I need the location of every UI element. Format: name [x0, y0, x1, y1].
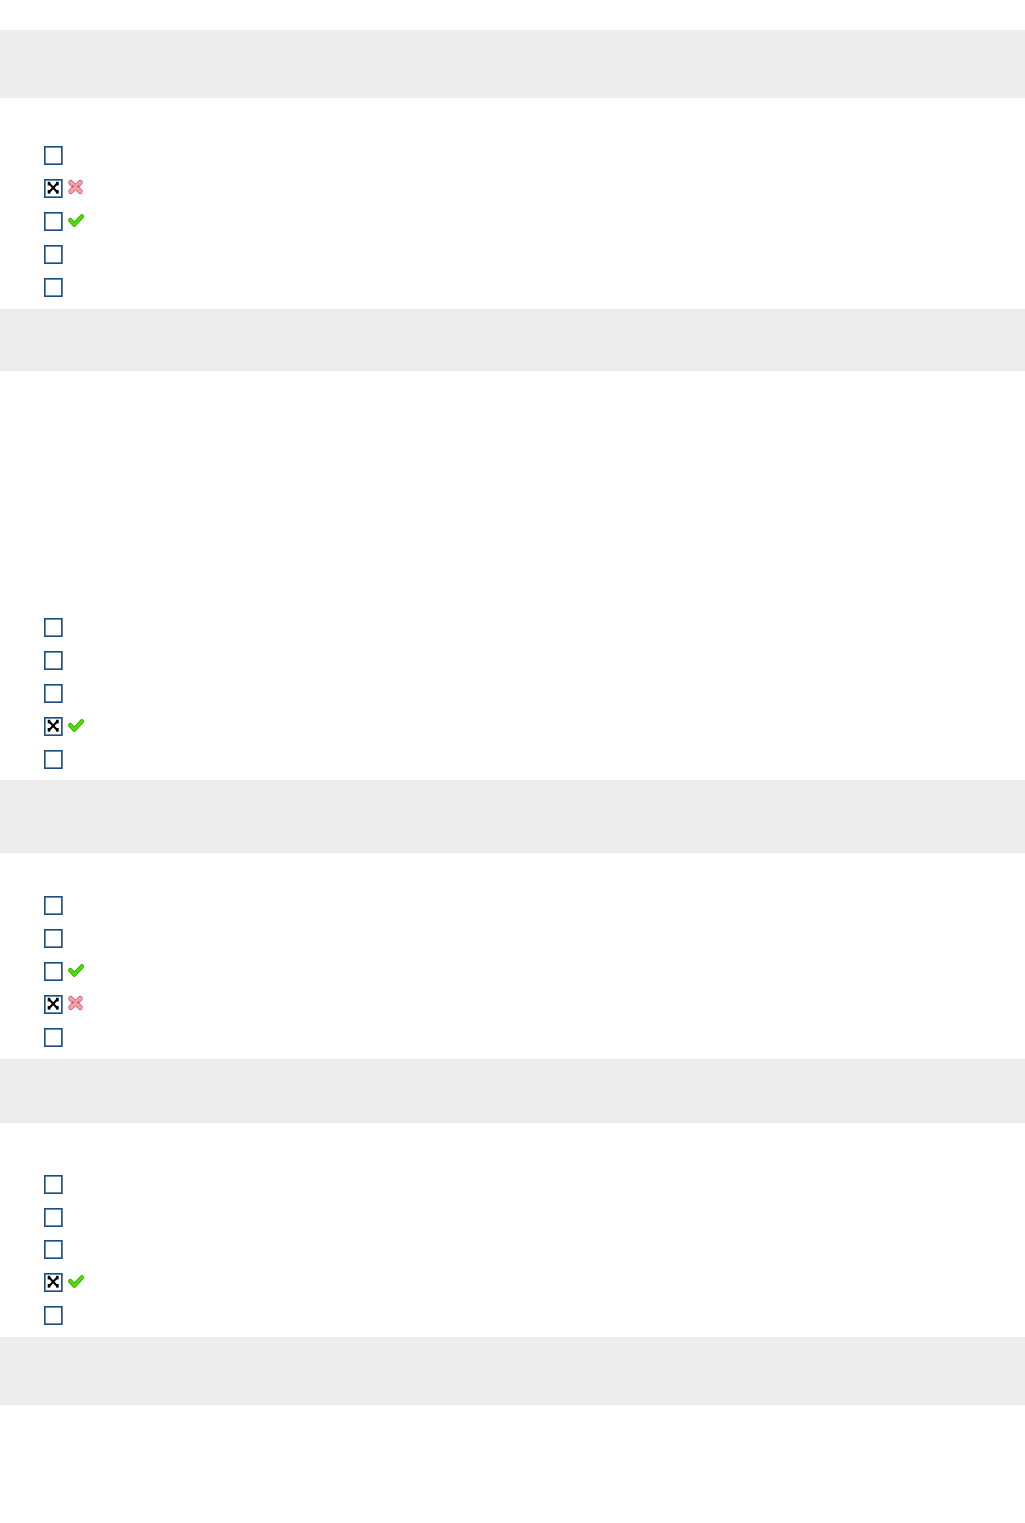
button[interactable]: Answer option: [44, 896, 63, 915]
other: Correct answer: [68, 964, 84, 977]
button[interactable]: Answer option: [44, 245, 63, 264]
button[interactable]: Answer option: [44, 1175, 63, 1194]
button[interactable]: Answer option: [44, 618, 63, 637]
button[interactable]: Question 4 option D: [0, 1273, 1025, 1292]
button[interactable]: Question 2 option D: [0, 717, 1025, 736]
button[interactable]: Question 3 option D: [0, 995, 1025, 1014]
button[interactable]: Answer option: [44, 651, 63, 670]
button[interactable]: Question 4 option B: [0, 1208, 1025, 1227]
button[interactable]: Question 4 option A: [0, 1175, 1025, 1194]
button[interactable]: Question 2 option E: [0, 750, 1025, 769]
button[interactable]: Question 4 option C: [0, 1240, 1025, 1259]
button[interactable]: Answer option: [44, 929, 63, 948]
button[interactable]: Selected answer: [44, 717, 63, 736]
other: Correct answer: [68, 1275, 84, 1288]
button[interactable]: Question 3 option B: [0, 929, 1025, 948]
button[interactable]: Question 2 option B: [0, 651, 1025, 670]
button[interactable]: Answer option: [44, 1028, 63, 1047]
button[interactable]: Question 1 option B: [0, 179, 1025, 198]
other: Correct answer: [68, 214, 84, 227]
button[interactable]: Selected answer: [44, 1273, 63, 1292]
button[interactable]: Question 4 option E: [0, 1306, 1025, 1325]
button[interactable]: Question 1 option D: [0, 245, 1025, 264]
button[interactable]: Question 3 option A: [0, 896, 1025, 915]
button[interactable]: Answer option: [44, 750, 63, 769]
button[interactable]: Selected answer: [44, 995, 63, 1014]
button[interactable]: Answer option: [44, 1208, 63, 1227]
button[interactable]: Answer option: [44, 962, 63, 981]
button[interactable]: Question 1 option A: [0, 146, 1025, 165]
button[interactable]: Answer option: [44, 1306, 63, 1325]
button[interactable]: Question 1 option C: [0, 212, 1025, 231]
button[interactable]: Question 2 option C: [0, 684, 1025, 703]
button[interactable]: Question 3 option C: [0, 962, 1025, 981]
button[interactable]: Answer option: [44, 1240, 63, 1259]
button[interactable]: Answer option: [44, 146, 63, 165]
button[interactable]: Question 3 option E: [0, 1028, 1025, 1047]
button[interactable]: Answer option: [44, 212, 63, 231]
button[interactable]: Answer option: [44, 278, 63, 297]
other: Correct answer: [68, 719, 84, 732]
button[interactable]: Question 2 option A: [0, 618, 1025, 637]
other: Wrong answer: [68, 180, 83, 194]
button[interactable]: Question 1 option E: [0, 278, 1025, 297]
button[interactable]: Answer option: [44, 684, 63, 703]
other: Wrong answer: [68, 996, 83, 1010]
button[interactable]: Selected answer: [44, 179, 63, 198]
